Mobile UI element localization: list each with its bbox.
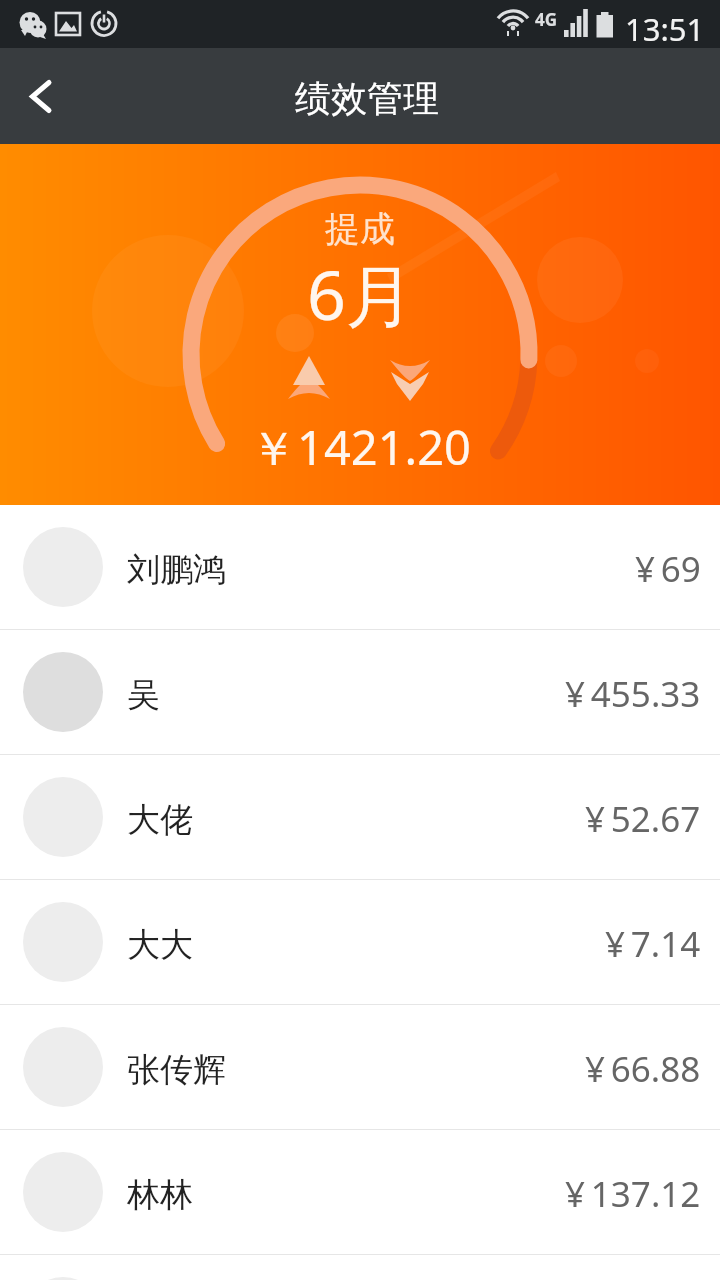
staticText: ¥ 7.14	[605, 920, 701, 968]
staticText: 大佬	[127, 799, 193, 841]
staticText: 绩效管理	[295, 76, 439, 121]
staticText: 刘鹏鸿	[127, 549, 226, 591]
button[interactable]: 刘鹏鸿	[0, 505, 720, 629]
staticText: 大大	[127, 924, 193, 966]
button[interactable]: 张传辉	[0, 1005, 720, 1129]
staticText: ¥ 52.67	[585, 795, 701, 843]
staticText: 林林	[127, 1174, 193, 1216]
button[interactable]: 大佬	[0, 755, 720, 879]
staticText: 4G	[535, 8, 558, 31]
staticText: 提成	[325, 207, 395, 251]
staticText: ¥ 66.88	[585, 1045, 701, 1093]
staticText: ¥ 455.33	[565, 670, 701, 718]
staticText: 吴	[127, 674, 160, 716]
button[interactable]: 大大	[0, 880, 720, 1004]
staticText: 6月	[307, 247, 414, 340]
button[interactable]: Back	[0, 48, 88, 144]
staticText: ¥ 137.12	[565, 1170, 701, 1218]
staticText: ￥1421.20	[250, 415, 471, 479]
staticText: ¥ 69	[635, 545, 701, 593]
staticText: 张传辉	[127, 1049, 226, 1091]
button[interactable]: 林林	[0, 1130, 720, 1254]
button[interactable]: 吴	[0, 630, 720, 754]
staticText: 13:51	[625, 8, 705, 50]
